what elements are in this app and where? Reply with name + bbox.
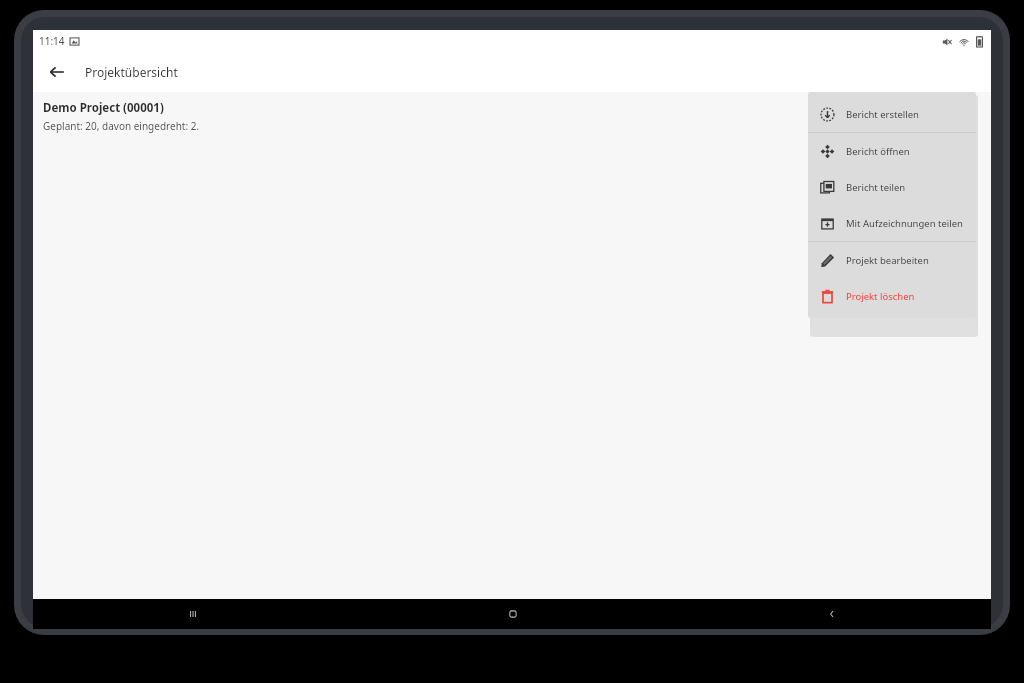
button[interactable]: Zurück [672,599,991,629]
button[interactable]: Bericht erstellen [808,96,976,132]
staticText: Projekt löschen [846,290,915,303]
staticText: 11:14 [39,34,65,48]
button[interactable]: Demo Project (00001) [33,92,991,133]
button[interactable]: Startbildschirm [353,599,672,629]
button[interactable]: Zurück [39,54,75,90]
staticText: Projekt bearbeiten [846,254,929,267]
staticText: Bericht öffnen [846,145,910,158]
button[interactable]: Projekt löschen [808,278,976,314]
staticText: Projektübersicht [85,64,178,80]
staticText: Mit Aufzeichnungen teilen [846,217,963,230]
button[interactable]: Bericht öffnen [808,133,976,169]
button[interactable]: Bericht teilen [808,169,976,205]
staticText: Bericht erstellen [846,108,919,121]
button[interactable]: Projekt bearbeiten [808,242,976,278]
button[interactable]: Mit Aufzeichnungen teilen [808,205,976,241]
staticText: Demo Project (00001) [43,100,164,116]
button[interactable]: Letzte Apps [33,599,353,629]
staticText: Bericht teilen [846,181,906,194]
staticText: Geplant: 20, davon eingedreht: 2. [43,119,200,133]
